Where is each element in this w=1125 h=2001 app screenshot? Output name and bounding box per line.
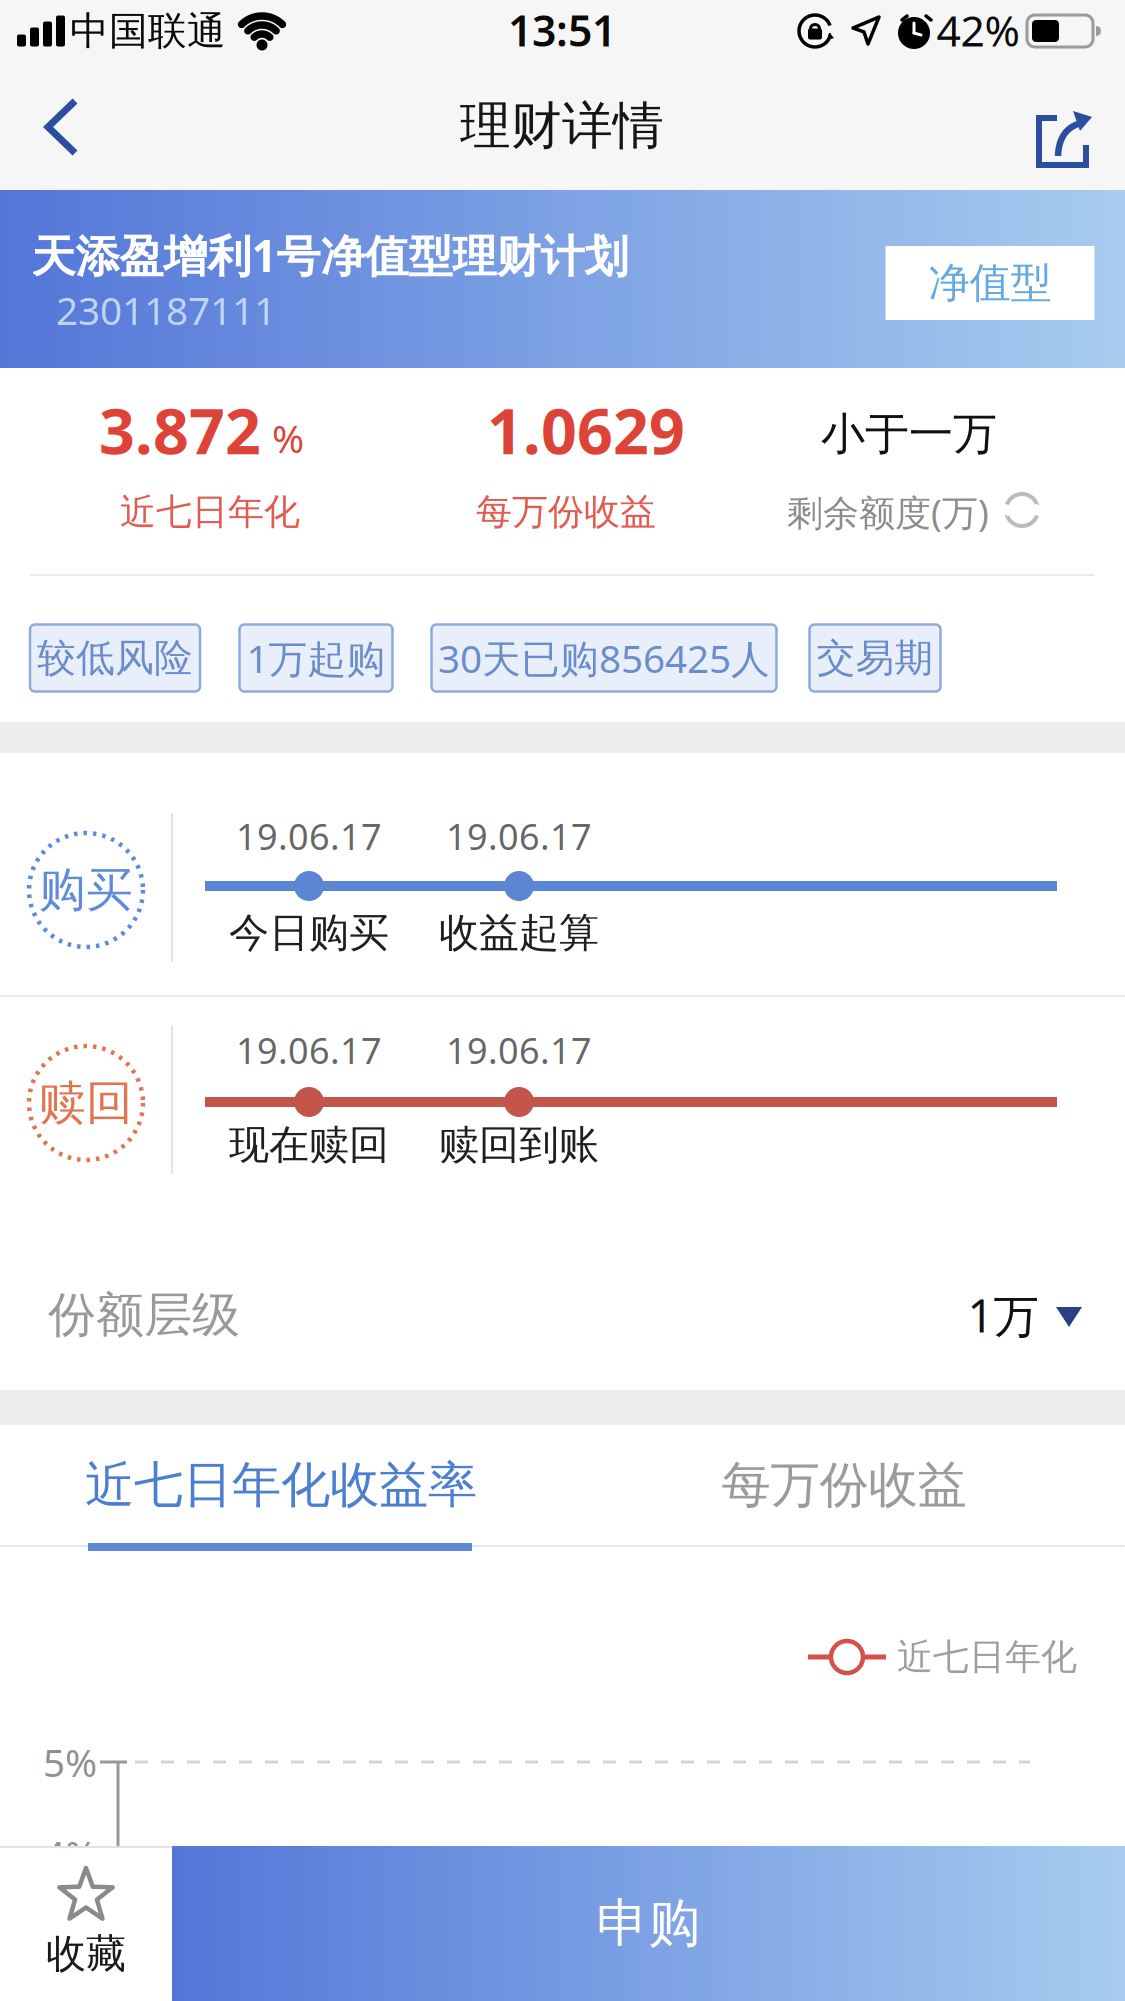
staticText: 1.0629	[487, 388, 685, 472]
staticText: 今日购买	[229, 908, 389, 957]
staticText: 较低风险	[37, 634, 193, 682]
staticText: 2301187111	[56, 284, 276, 336]
staticText: 每万份收益	[476, 490, 656, 534]
staticText: 19.06.17	[446, 812, 592, 860]
staticText: 份额层级	[48, 1285, 240, 1344]
staticText: 42%	[936, 2, 1019, 58]
staticText: 19.06.17	[236, 1026, 382, 1074]
staticText: 近七日年化	[120, 490, 300, 534]
staticText: 每万份收益	[721, 1455, 966, 1515]
staticText: 4%	[43, 1828, 97, 1880]
staticText: 30天已购856425人	[438, 632, 770, 684]
button[interactable]: Refresh	[1002, 490, 1042, 530]
staticText: 现在赎回	[229, 1120, 389, 1169]
staticText: 赎回到账	[439, 1120, 599, 1169]
button[interactable]: 净值型	[885, 246, 1094, 320]
staticText: 3.872	[99, 388, 261, 472]
staticText: 近七日年化收益率	[85, 1455, 477, 1515]
staticText: 交易期	[816, 634, 933, 682]
staticText: 小于一万	[821, 407, 997, 461]
button[interactable]: 每万份收益	[563, 1430, 1125, 1540]
staticText: 净值型	[928, 258, 1051, 308]
button[interactable]: 申购	[172, 1846, 1125, 2001]
staticText: 天添盈增利1号净值型理财计划	[31, 226, 628, 284]
staticText: 申购	[596, 1892, 700, 1955]
staticText: 收益起算	[439, 908, 599, 957]
staticText: 19.06.17	[446, 1026, 592, 1074]
button[interactable]: Share	[1031, 105, 1097, 171]
staticText: 收藏	[46, 1929, 126, 1978]
button[interactable]: Back	[41, 96, 83, 158]
staticText: 1万起购	[246, 632, 385, 684]
staticText: 剩余额度(万)	[787, 488, 989, 536]
staticText: 1万	[967, 1285, 1038, 1345]
button[interactable]: 份额层级	[0, 1240, 1125, 1390]
staticText: 13:51	[508, 2, 616, 58]
staticText: 5%	[43, 1736, 97, 1788]
staticText: 理财详情	[460, 95, 664, 157]
staticText: 购买	[39, 861, 133, 919]
staticText: 中国联通	[70, 7, 226, 55]
button[interactable]: 近七日年化收益率	[0, 1430, 562, 1540]
staticText: 近七日年化	[897, 1635, 1077, 1679]
staticText: %	[272, 412, 304, 464]
staticText: 赎回	[39, 1074, 133, 1132]
button[interactable]: 收藏	[0, 1846, 172, 2001]
staticText: 19.06.17	[236, 812, 382, 860]
